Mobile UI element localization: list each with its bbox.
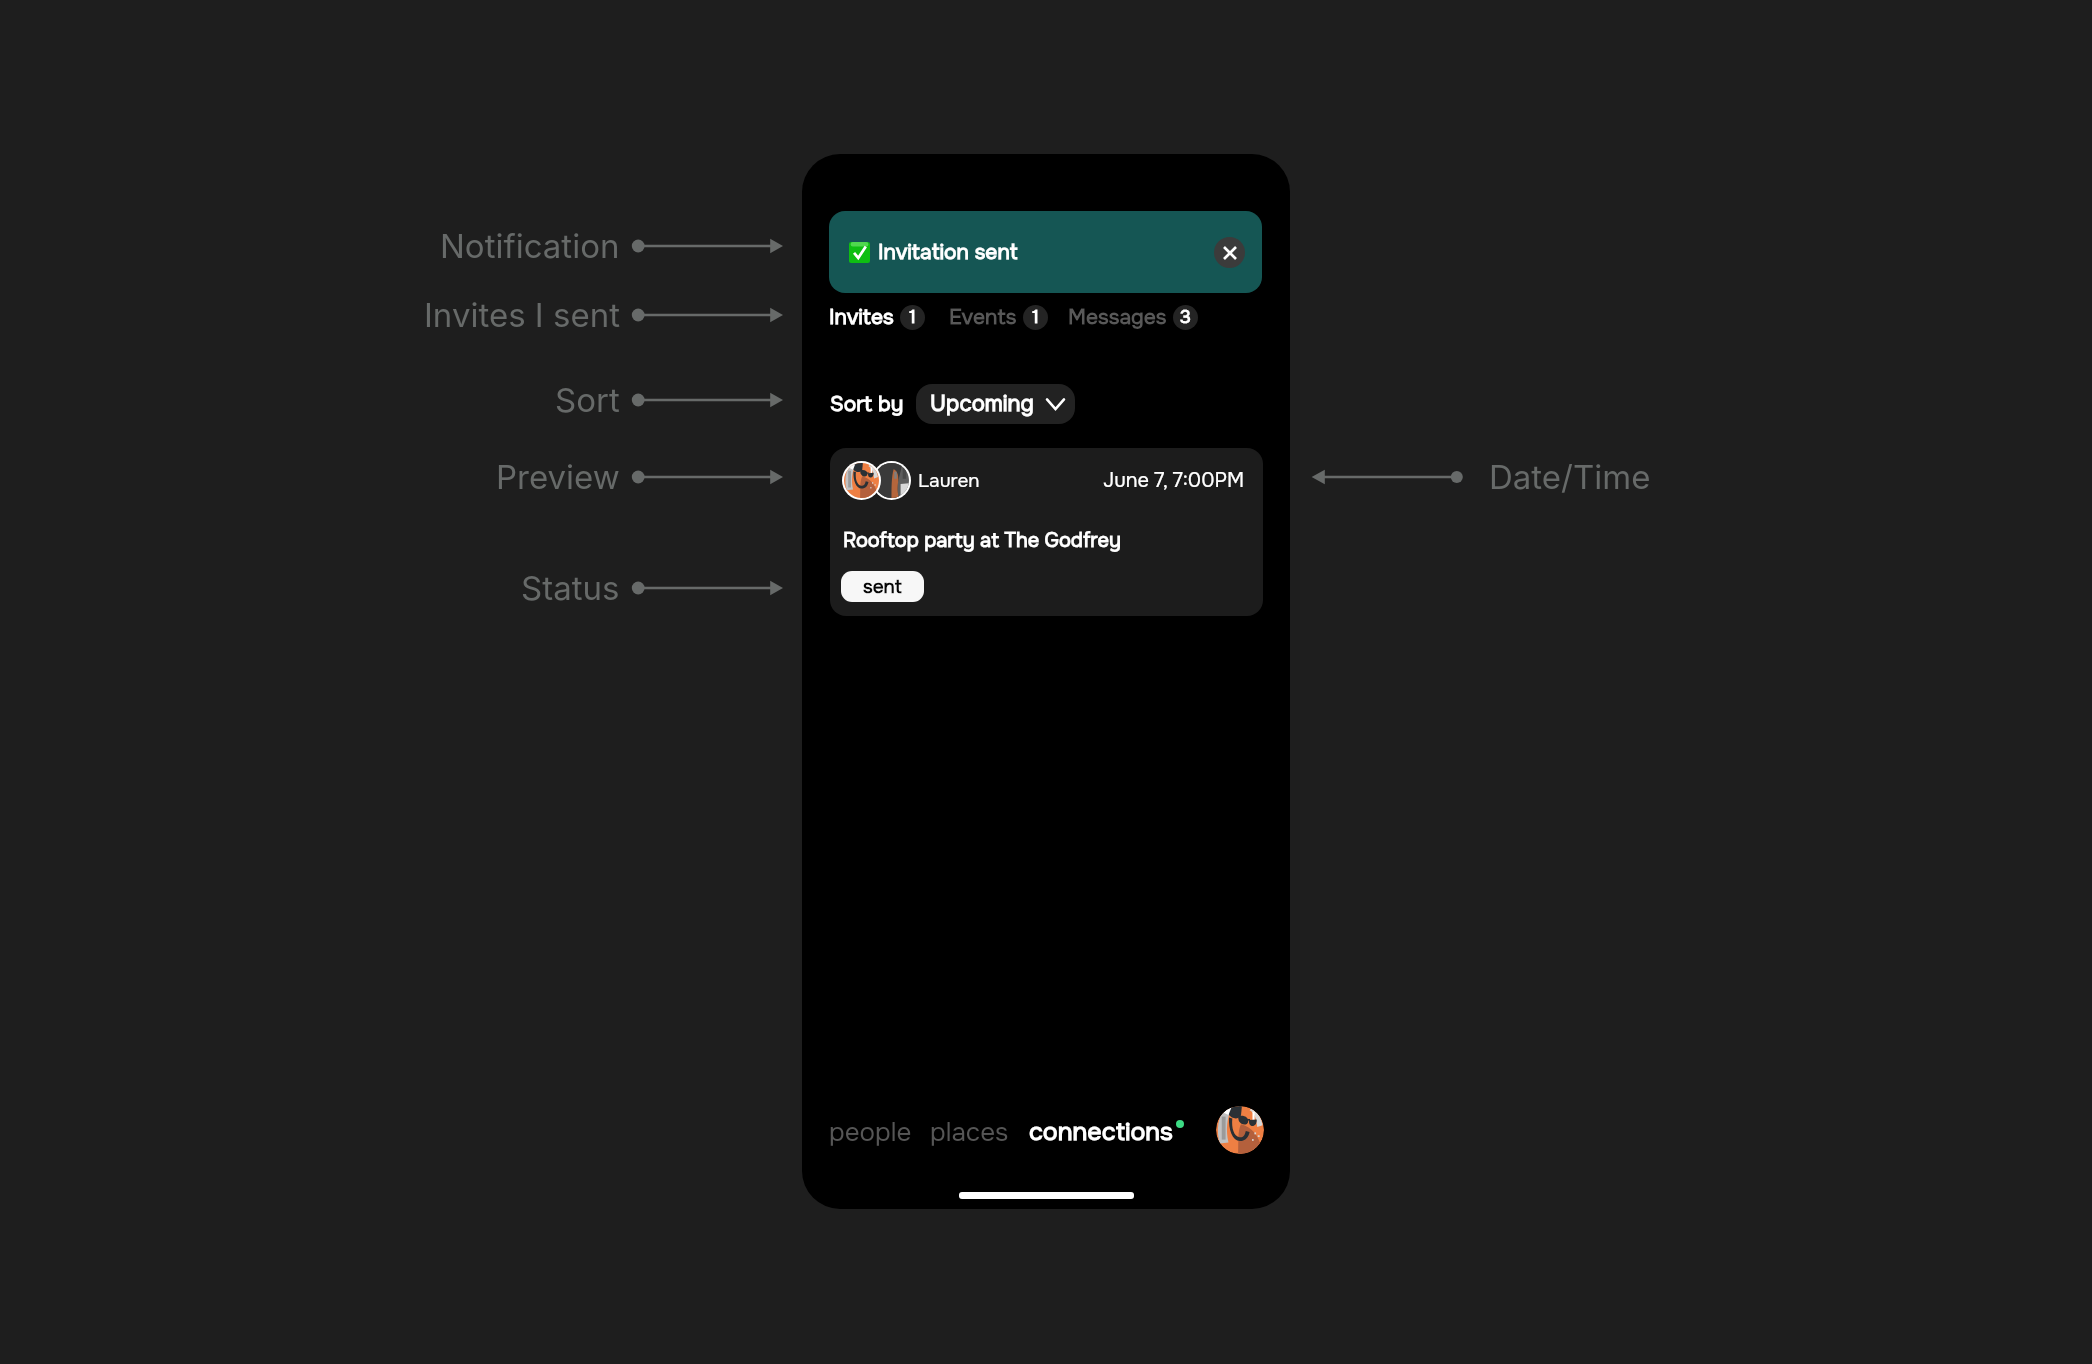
button[interactable]: Lauren: [830, 448, 1263, 616]
staticText: people: [829, 1116, 912, 1149]
staticText: 1: [1032, 306, 1039, 329]
staticText: Invitation sent: [878, 239, 1018, 266]
staticText: Rooftop party at The Godfrey: [843, 528, 1121, 554]
staticText: places: [930, 1116, 1009, 1149]
staticText: Status: [521, 568, 620, 608]
staticText: Lauren: [918, 469, 980, 493]
staticText: Invites: [829, 304, 894, 331]
staticText: Sort: [555, 380, 620, 420]
button[interactable]: Events: [949, 304, 1048, 331]
staticText: 1: [909, 306, 916, 329]
staticText: Preview: [496, 457, 620, 497]
staticText: Events: [949, 304, 1017, 331]
button[interactable]: Upcoming: [916, 384, 1075, 424]
staticText: Invites I sent: [424, 295, 620, 335]
button[interactable]: people: [829, 1116, 912, 1149]
button[interactable]: Invitation sent: [829, 211, 1262, 293]
button[interactable]: Dismiss: [1214, 237, 1245, 268]
staticText: Sort by: [830, 391, 904, 418]
staticText: Messages: [1068, 304, 1167, 331]
button[interactable]: connections: [1029, 1116, 1184, 1148]
button[interactable]: Invites: [829, 304, 925, 331]
staticText: Notification: [440, 226, 620, 266]
staticText: 3: [1180, 306, 1191, 329]
staticText: connections: [1029, 1116, 1173, 1148]
button[interactable]: sent: [841, 571, 924, 602]
button[interactable]: Profile: [1216, 1106, 1264, 1154]
button[interactable]: places: [930, 1116, 1009, 1149]
button[interactable]: Messages: [1068, 304, 1198, 331]
staticText: Date/Time: [1489, 457, 1651, 497]
staticText: Upcoming: [930, 390, 1034, 418]
staticText: June 7, 7:00PM: [1103, 468, 1245, 494]
staticText: sent: [863, 575, 902, 599]
